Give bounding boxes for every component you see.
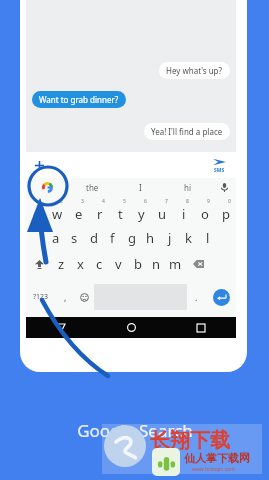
staticText: , [64, 291, 67, 303]
staticText: v [115, 255, 122, 273]
staticText: SMS [214, 167, 225, 174]
button[interactable]: z [52, 251, 71, 277]
staticText: j [168, 229, 172, 247]
staticText: 6 [144, 198, 147, 205]
staticText: the [86, 182, 99, 193]
staticText: t [118, 205, 123, 223]
staticText: Want to grab dinner? [39, 94, 119, 105]
staticText: 8 [186, 198, 189, 205]
button[interactable]: x [71, 251, 90, 277]
button[interactable]: d [84, 225, 103, 251]
staticText: 1 [39, 198, 42, 205]
staticText: w [52, 205, 63, 223]
staticText: a [52, 229, 60, 247]
button[interactable]: Back [26, 317, 96, 338]
staticText: q [33, 205, 41, 223]
button[interactable]: g [122, 225, 141, 251]
button[interactable]: Want to grab dinner? [32, 91, 126, 108]
staticText: y [138, 205, 145, 223]
button[interactable]: s [65, 225, 84, 251]
staticText: x [77, 255, 84, 273]
staticText: o [201, 205, 209, 223]
staticText: h [146, 229, 155, 247]
button[interactable]: l [198, 225, 217, 251]
staticText: u [158, 205, 167, 223]
button[interactable]: Backspace [185, 251, 211, 277]
button[interactable]: k [179, 225, 198, 251]
button[interactable]: Yea! I'll find a place [144, 123, 230, 140]
button[interactable]: j [160, 225, 179, 251]
staticText: 仙人掌下载网 [184, 451, 250, 465]
button[interactable]: hi [164, 178, 212, 197]
staticText: . [195, 291, 198, 303]
staticText: Hey what's up? [166, 65, 223, 76]
button[interactable]: 3 [68, 198, 89, 225]
staticText: 3 [81, 198, 84, 205]
button[interactable]: Home [96, 317, 166, 338]
button[interactable]: 9 [194, 198, 215, 225]
button[interactable]: Shift [26, 251, 52, 277]
button[interactable]: c [90, 251, 109, 277]
button[interactable]: Recents [166, 317, 236, 338]
staticText: n [152, 255, 161, 273]
button[interactable]: b [128, 251, 147, 277]
button[interactable]: m [166, 251, 185, 277]
button[interactable]: the [68, 178, 116, 197]
button[interactable]: 2 [47, 198, 68, 225]
button[interactable]: 1 [26, 198, 47, 225]
staticText: 0 [228, 198, 231, 205]
button[interactable]: Voice input [212, 178, 236, 197]
staticText: Google Search [77, 419, 193, 442]
staticText: l [206, 229, 210, 247]
staticText: i [182, 205, 186, 223]
button[interactable]: 8 [173, 198, 194, 225]
staticText: c [96, 255, 103, 273]
button[interactable]: a [46, 225, 65, 251]
button[interactable]: Enter [206, 277, 236, 317]
button[interactable]: 7 [152, 198, 173, 225]
staticText: 7 [165, 198, 168, 205]
staticText: 9 [207, 198, 210, 205]
staticText: 5 [123, 198, 126, 205]
staticText: hi [184, 182, 192, 193]
staticText: s [71, 229, 78, 247]
button[interactable]: 0 [215, 198, 236, 225]
staticText: I [139, 182, 142, 193]
staticText: z [58, 255, 65, 273]
button[interactable]: v [109, 251, 128, 277]
staticText: 长翔下载 [150, 428, 230, 453]
staticText: m [169, 255, 182, 273]
button[interactable]: . [187, 277, 206, 317]
staticText: k [185, 229, 192, 247]
staticText: www.hcbxqrc.com [192, 466, 235, 473]
staticText: e [75, 205, 83, 223]
button[interactable]: 6 [131, 198, 152, 225]
staticText: ?123 [33, 292, 49, 302]
button[interactable]: Send SMS [202, 152, 236, 178]
staticText: b [134, 255, 142, 273]
staticText: 2 [60, 198, 63, 205]
staticText: Yea! I'll find a place [151, 126, 223, 137]
button[interactable]: Hey what's up? [159, 62, 230, 79]
button[interactable]: I [116, 178, 164, 197]
button[interactable]: ?123 [26, 277, 56, 317]
button[interactable]: 4 [89, 198, 110, 225]
staticText: 4 [102, 198, 105, 205]
button[interactable]: Attach [26, 152, 52, 178]
button[interactable]: h [141, 225, 160, 251]
staticText: f [110, 229, 115, 247]
button[interactable]: , [56, 277, 75, 317]
button[interactable]: Emoji [75, 277, 94, 317]
button[interactable]: f [103, 225, 122, 251]
button[interactable]: 5 [110, 198, 131, 225]
staticText: r [97, 205, 103, 223]
staticText: d [90, 229, 98, 247]
button[interactable]: Google Search [26, 178, 68, 197]
staticText: p [222, 205, 230, 223]
button[interactable]: n [147, 251, 166, 277]
staticText: g [128, 229, 136, 247]
